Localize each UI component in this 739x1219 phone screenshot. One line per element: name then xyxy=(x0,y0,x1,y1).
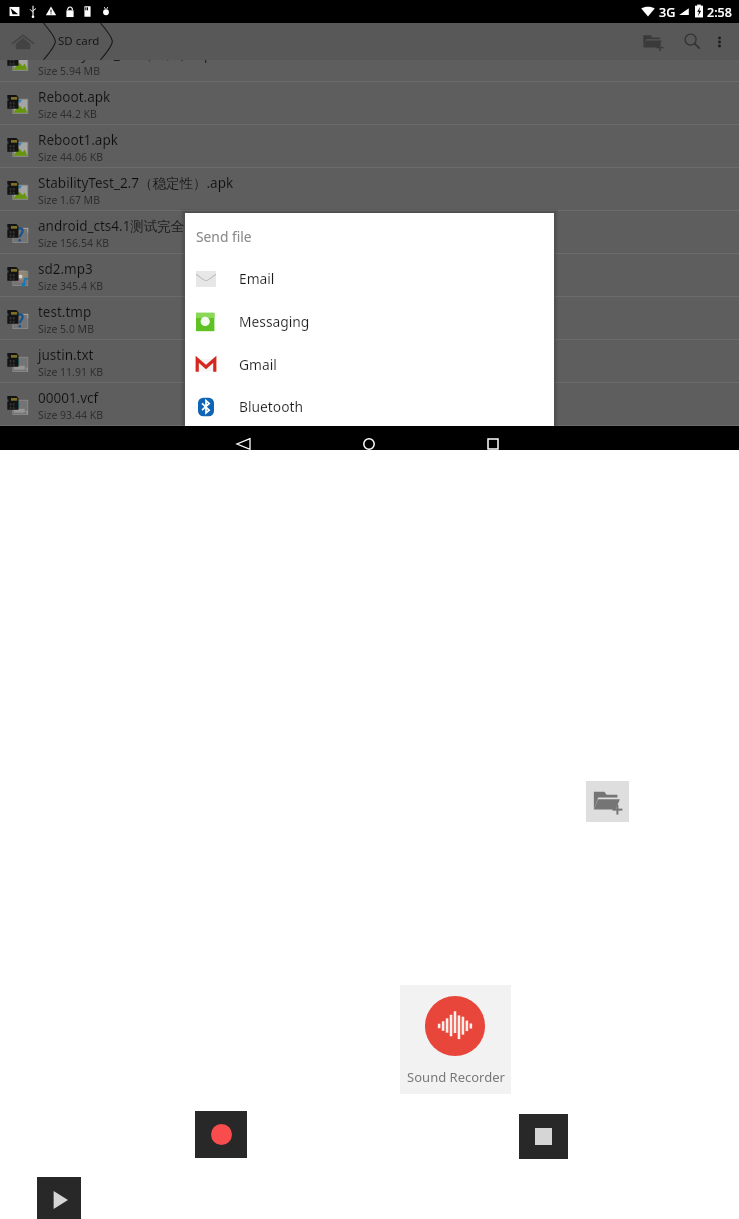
staticText: Messaging xyxy=(239,312,310,331)
staticText: StabilityTest_2.7（稳定性）.apk xyxy=(38,174,234,192)
staticText: 2:58 xyxy=(707,4,732,21)
button[interactable]: Gmail xyxy=(185,343,554,386)
button[interactable]: Back xyxy=(231,426,257,450)
button[interactable]: Home xyxy=(356,426,382,450)
staticText: Size 11.91 KB xyxy=(38,365,103,379)
button[interactable]: sd2.mp3 xyxy=(0,254,739,297)
button[interactable]: StabilityTest_2.7（稳定性）.apk xyxy=(0,168,739,211)
button[interactable]: 00001.vcf xyxy=(0,383,739,426)
staticText: Size 44.06 KB xyxy=(38,150,103,164)
button[interactable]: android_cts4.1测试完全 xyxy=(0,211,739,254)
button[interactable]: Email xyxy=(185,257,554,300)
button[interactable]: Recents xyxy=(480,426,506,450)
button[interactable]: New folder xyxy=(586,781,629,822)
staticText: Size 44.2 KB xyxy=(38,107,97,121)
staticText: justin.txt xyxy=(38,346,94,364)
staticText: Reboot1.apk xyxy=(38,131,118,149)
button[interactable]: Play xyxy=(37,1177,81,1219)
button[interactable]: Sound Recorder xyxy=(400,985,511,1094)
button[interactable]: test.tmp xyxy=(0,297,739,340)
staticText: Send file xyxy=(196,227,252,246)
staticText: Size 156.54 KB xyxy=(38,236,109,250)
button[interactable]: More options xyxy=(706,23,732,60)
button[interactable]: Reboot.apk xyxy=(0,82,739,125)
button[interactable]: Stop xyxy=(519,1114,568,1159)
staticText: android_cts4.1测试完全 xyxy=(38,217,185,235)
staticText: SD card xyxy=(58,33,100,49)
button[interactable]: Record xyxy=(195,1111,247,1158)
staticText: 00001.vcf xyxy=(38,389,99,407)
staticText: Size 1.67 MB xyxy=(38,193,100,207)
staticText: Email xyxy=(239,269,275,288)
staticText: MonkeyTest_1.2（压力）.apk xyxy=(38,60,220,63)
staticText: test.tmp xyxy=(38,303,92,321)
button[interactable]: Bluetooth xyxy=(185,385,554,428)
button[interactable]: Search xyxy=(676,23,708,60)
button[interactable]: New folder xyxy=(636,23,670,60)
staticText: Size 93.44 KB xyxy=(38,408,103,422)
staticText: Bluetooth xyxy=(239,397,304,416)
staticText: sd2.mp3 xyxy=(38,260,93,278)
button[interactable]: Home xyxy=(8,27,38,57)
button[interactable]: justin.txt xyxy=(0,340,739,383)
button[interactable]: MonkeyTest_1.2（压力）.apk xyxy=(0,60,739,82)
button[interactable]: Messaging xyxy=(185,300,554,343)
staticText: Size 5.94 MB xyxy=(38,64,100,78)
button[interactable]: Reboot1.apk xyxy=(0,125,739,168)
staticText: Gmail xyxy=(239,355,277,374)
staticText: Size 345.4 KB xyxy=(38,279,103,293)
staticText: Reboot.apk xyxy=(38,88,111,106)
staticText: Size 5.0 MB xyxy=(38,322,94,336)
staticText: 3G xyxy=(659,4,676,21)
staticText: Sound Recorder xyxy=(407,1068,505,1086)
